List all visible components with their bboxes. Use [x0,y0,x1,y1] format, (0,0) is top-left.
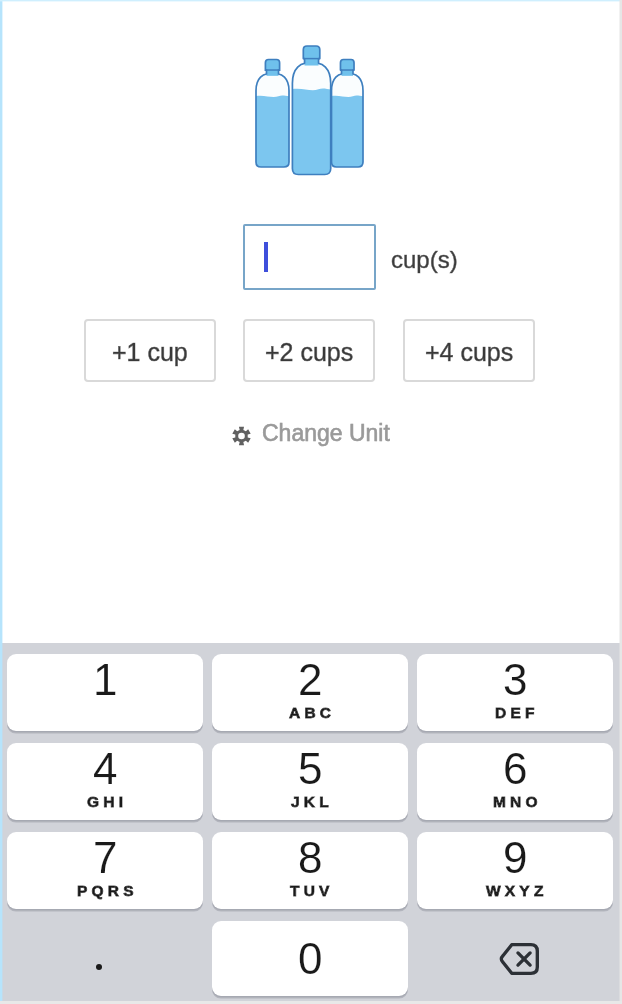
staticText: 4 [93,744,118,793]
staticText: PQRS [77,882,138,899]
staticText: +1 cup [112,338,188,366]
button[interactable]: 8 [212,832,408,909]
button[interactable]: 5 [212,743,408,820]
button[interactable]: 9 [417,832,613,909]
staticText: 2 [298,655,323,704]
staticText: MNO [493,793,542,810]
button[interactable]: 1 [7,654,203,731]
button[interactable]: +1 cup [84,319,216,382]
staticText: TUV [290,882,334,899]
button[interactable]: 7 [7,832,203,909]
button[interactable]: 3 [417,654,613,731]
staticText: GHI [87,793,128,810]
button[interactable]: Change unit settings [222,410,400,456]
staticText: 1 [93,655,118,704]
staticText: Change Unit [262,420,390,446]
staticText: 8 [298,833,323,882]
staticText: Change Unit [262,420,390,446]
button[interactable]: 4 [7,743,203,820]
button[interactable]: +4 cups [403,319,535,382]
button[interactable]: 2 [212,654,408,731]
other: Change unit settings [232,426,251,446]
staticText: +2 cups [265,338,354,366]
staticText: 3 [503,655,528,704]
staticText: WXYZ [486,882,548,899]
staticText: 5 [298,744,323,793]
staticText: cup(s) [391,246,458,273]
staticText: TUV [290,882,334,899]
staticText: +1 cup [112,338,188,366]
button[interactable]: Backspace [417,921,613,996]
button[interactable] [243,224,376,290]
staticText: 6 [503,744,528,793]
staticText: +4 cups [425,338,514,366]
staticText: 9 [503,833,528,882]
staticText: 7 [93,833,118,882]
staticText: GHI [87,793,128,810]
staticText: JKL [291,793,333,810]
staticText: +4 cups [425,338,514,366]
staticText: 0 [298,934,323,983]
staticText: JKL [291,793,333,810]
button[interactable]: 6 [417,743,613,820]
staticText: WXYZ [486,882,548,899]
staticText: ABC [289,704,336,721]
staticText: cup(s) [391,246,458,273]
staticText: MNO [493,793,542,810]
staticText: PQRS [77,882,138,899]
button[interactable]: 0 [212,921,408,996]
staticText: ABC [289,704,336,721]
staticText: +2 cups [265,338,354,366]
button[interactable]: +2 cups [243,319,375,382]
staticText: DEF [495,704,539,721]
staticText: DEF [495,704,539,721]
button[interactable]: Decimal point [7,921,203,996]
